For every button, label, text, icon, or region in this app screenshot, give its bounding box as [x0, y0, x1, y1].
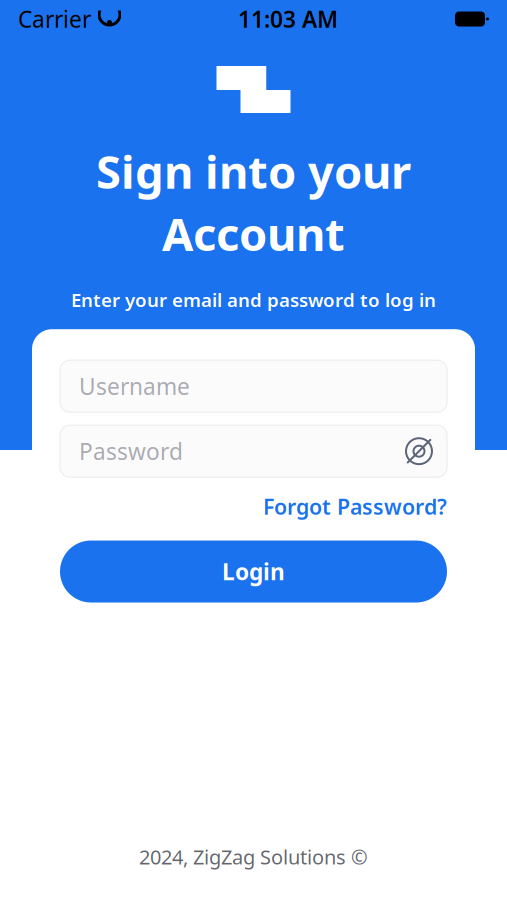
- staticText: 2024, ZigZag Solutions ©: [139, 843, 368, 870]
- staticText: Carrier: [18, 4, 91, 34]
- staticText: Password: [79, 436, 183, 466]
- staticText: Username: [79, 371, 190, 401]
- button[interactable]: Forgot Password?: [263, 486, 447, 526]
- staticText: 11:03 AM: [238, 4, 338, 34]
- button[interactable]: Show password: [399, 431, 439, 471]
- staticText: Sign into your: [96, 141, 411, 201]
- staticText: Login: [222, 556, 285, 587]
- staticText: Account: [162, 203, 345, 263]
- staticText: Enter your email and password to log in: [71, 287, 436, 312]
- button[interactable]: Login: [60, 540, 447, 602]
- staticText: Forgot Password?: [263, 492, 447, 520]
